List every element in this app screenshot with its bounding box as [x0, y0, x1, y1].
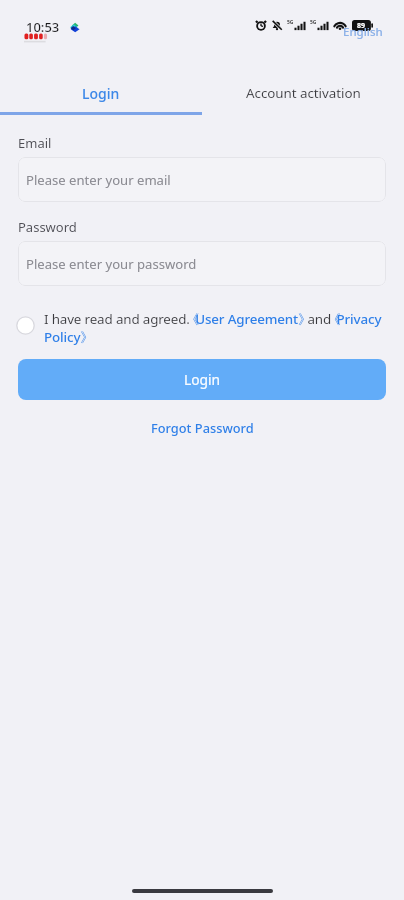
- button[interactable]: Login: [18, 359, 386, 400]
- staticText: Email: [18, 134, 52, 152]
- staticText: 5G: [287, 19, 294, 26]
- staticText: 5G: [310, 19, 317, 26]
- button[interactable]: English: [343, 24, 383, 40]
- button[interactable]: Please enter your password: [18, 241, 386, 286]
- staticText: Password: [18, 218, 77, 236]
- staticText: Please enter your email: [26, 171, 171, 189]
- staticText: 89: [357, 21, 366, 31]
- staticText: Account activation: [246, 84, 361, 102]
- button[interactable]: Agree to user agreement and privacy poli…: [16, 311, 44, 335]
- button[interactable]: Please enter your email: [18, 157, 386, 202]
- staticText: Login: [184, 370, 221, 389]
- staticText: 10:53: [26, 18, 60, 36]
- staticText: Please enter your password: [26, 255, 197, 273]
- button[interactable]: Account activation: [202, 75, 404, 111]
- staticText: Login: [82, 84, 120, 103]
- button[interactable]: Forgot Password: [143, 417, 262, 438]
- button[interactable]: Login: [0, 75, 202, 111]
- staticText: I have read and agreed.《User Agreement》a…: [44, 310, 384, 346]
